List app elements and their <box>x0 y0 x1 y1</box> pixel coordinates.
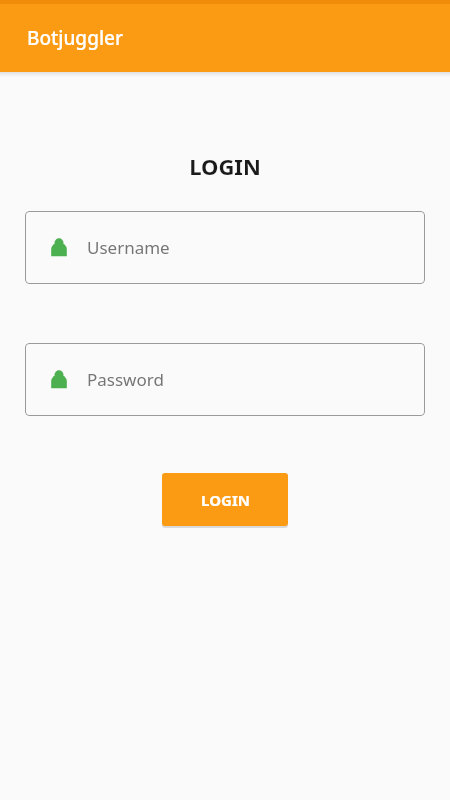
button[interactable]: Username <box>25 211 425 284</box>
staticText: Password <box>87 368 164 391</box>
staticText: Botjuggler <box>27 25 123 51</box>
staticText: LOGIN <box>189 151 261 181</box>
button[interactable]: LOGIN <box>162 473 288 526</box>
staticText: Username <box>87 236 170 259</box>
staticText: LOGIN <box>201 490 250 510</box>
button[interactable]: Password <box>25 343 425 416</box>
